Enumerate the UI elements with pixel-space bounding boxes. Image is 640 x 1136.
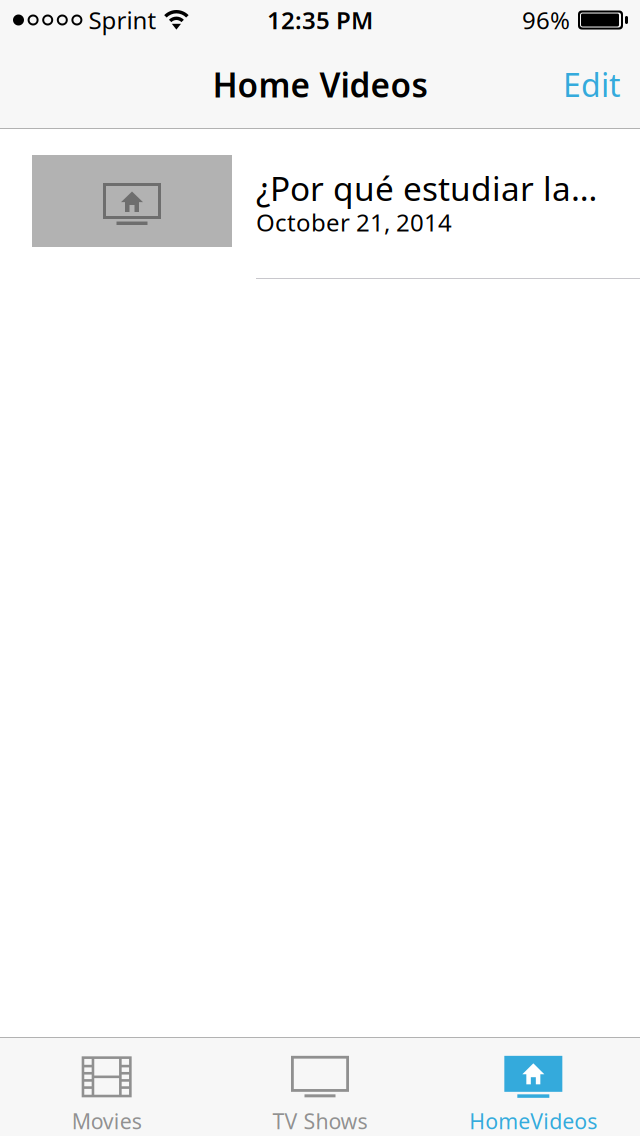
staticText: 12:35 PM bbox=[267, 4, 373, 36]
button[interactable]: HomeVideos bbox=[427, 1035, 640, 1136]
button[interactable]: Movies bbox=[0, 1035, 213, 1136]
staticText: 96% bbox=[522, 4, 570, 36]
staticText: Home Videos bbox=[212, 62, 427, 107]
staticText: Sprint bbox=[88, 4, 156, 36]
staticText: ¿Por qué estudiar la… bbox=[256, 166, 597, 210]
staticText: TV Shows bbox=[272, 1107, 367, 1135]
staticText: Movies bbox=[72, 1107, 142, 1135]
button[interactable]: TV Shows bbox=[213, 1035, 427, 1136]
staticText: Edit bbox=[563, 63, 621, 106]
staticText: HomeVideos bbox=[469, 1107, 597, 1135]
staticText: October 21, 2014 bbox=[256, 206, 452, 238]
button[interactable]: ¿Por qué estudiar la… bbox=[0, 129, 640, 279]
button[interactable]: Edit bbox=[549, 51, 635, 118]
